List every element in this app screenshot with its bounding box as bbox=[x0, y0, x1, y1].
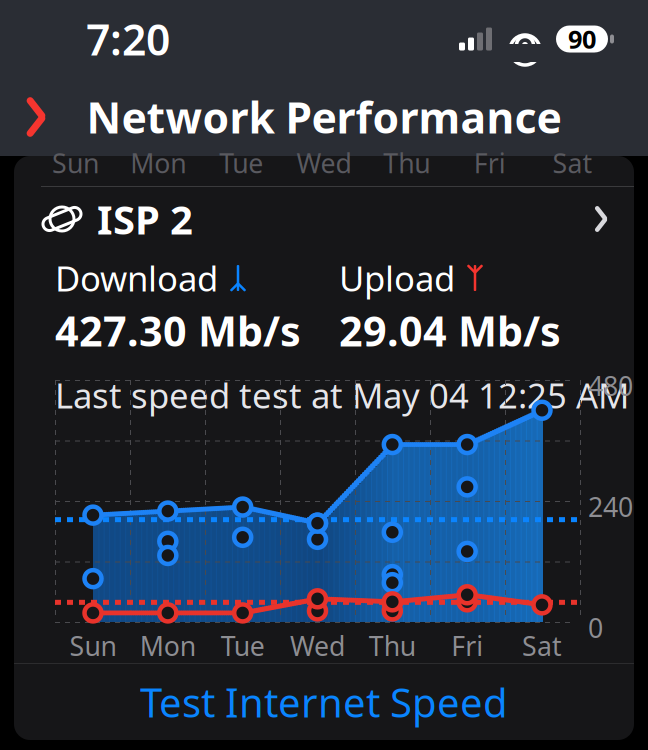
staticText: Last speed test at May 04 12:25 AM bbox=[55, 372, 629, 418]
staticText: 480 bbox=[588, 368, 633, 403]
button[interactable]: Back bbox=[10, 88, 62, 146]
staticText: Fri bbox=[474, 145, 506, 181]
staticText: Thu bbox=[383, 145, 430, 181]
button[interactable]: Test Internet Speed bbox=[14, 664, 634, 740]
staticText: 427.30 Mb/s bbox=[55, 303, 301, 358]
staticText: Mon bbox=[140, 628, 196, 663]
staticText: Tue bbox=[221, 628, 265, 663]
staticText: Network Performance bbox=[86, 89, 561, 145]
staticText: Download bbox=[55, 255, 218, 301]
staticText: Sat bbox=[522, 628, 562, 663]
staticText: Thu bbox=[369, 628, 416, 663]
staticText: Test Internet Speed bbox=[140, 675, 508, 728]
staticText: 0 bbox=[588, 610, 603, 645]
staticText: 7:20 bbox=[86, 11, 170, 67]
staticText: Sat bbox=[553, 145, 593, 181]
staticText: ISP 2 bbox=[97, 192, 193, 245]
staticText: Wed bbox=[296, 145, 351, 181]
staticText: Wed bbox=[290, 628, 345, 663]
staticText: Sun bbox=[52, 145, 99, 181]
staticText: Mon bbox=[130, 145, 186, 181]
staticText: Fri bbox=[451, 628, 483, 663]
button[interactable]: ISP 2 bbox=[14, 187, 634, 251]
staticText: Tue bbox=[219, 145, 263, 181]
staticText: 90 bbox=[568, 22, 596, 56]
staticText: 29.04 Mb/s bbox=[339, 303, 561, 358]
staticText: Sun bbox=[69, 628, 116, 663]
staticText: Upload bbox=[339, 255, 455, 301]
staticText: 240 bbox=[588, 489, 633, 524]
